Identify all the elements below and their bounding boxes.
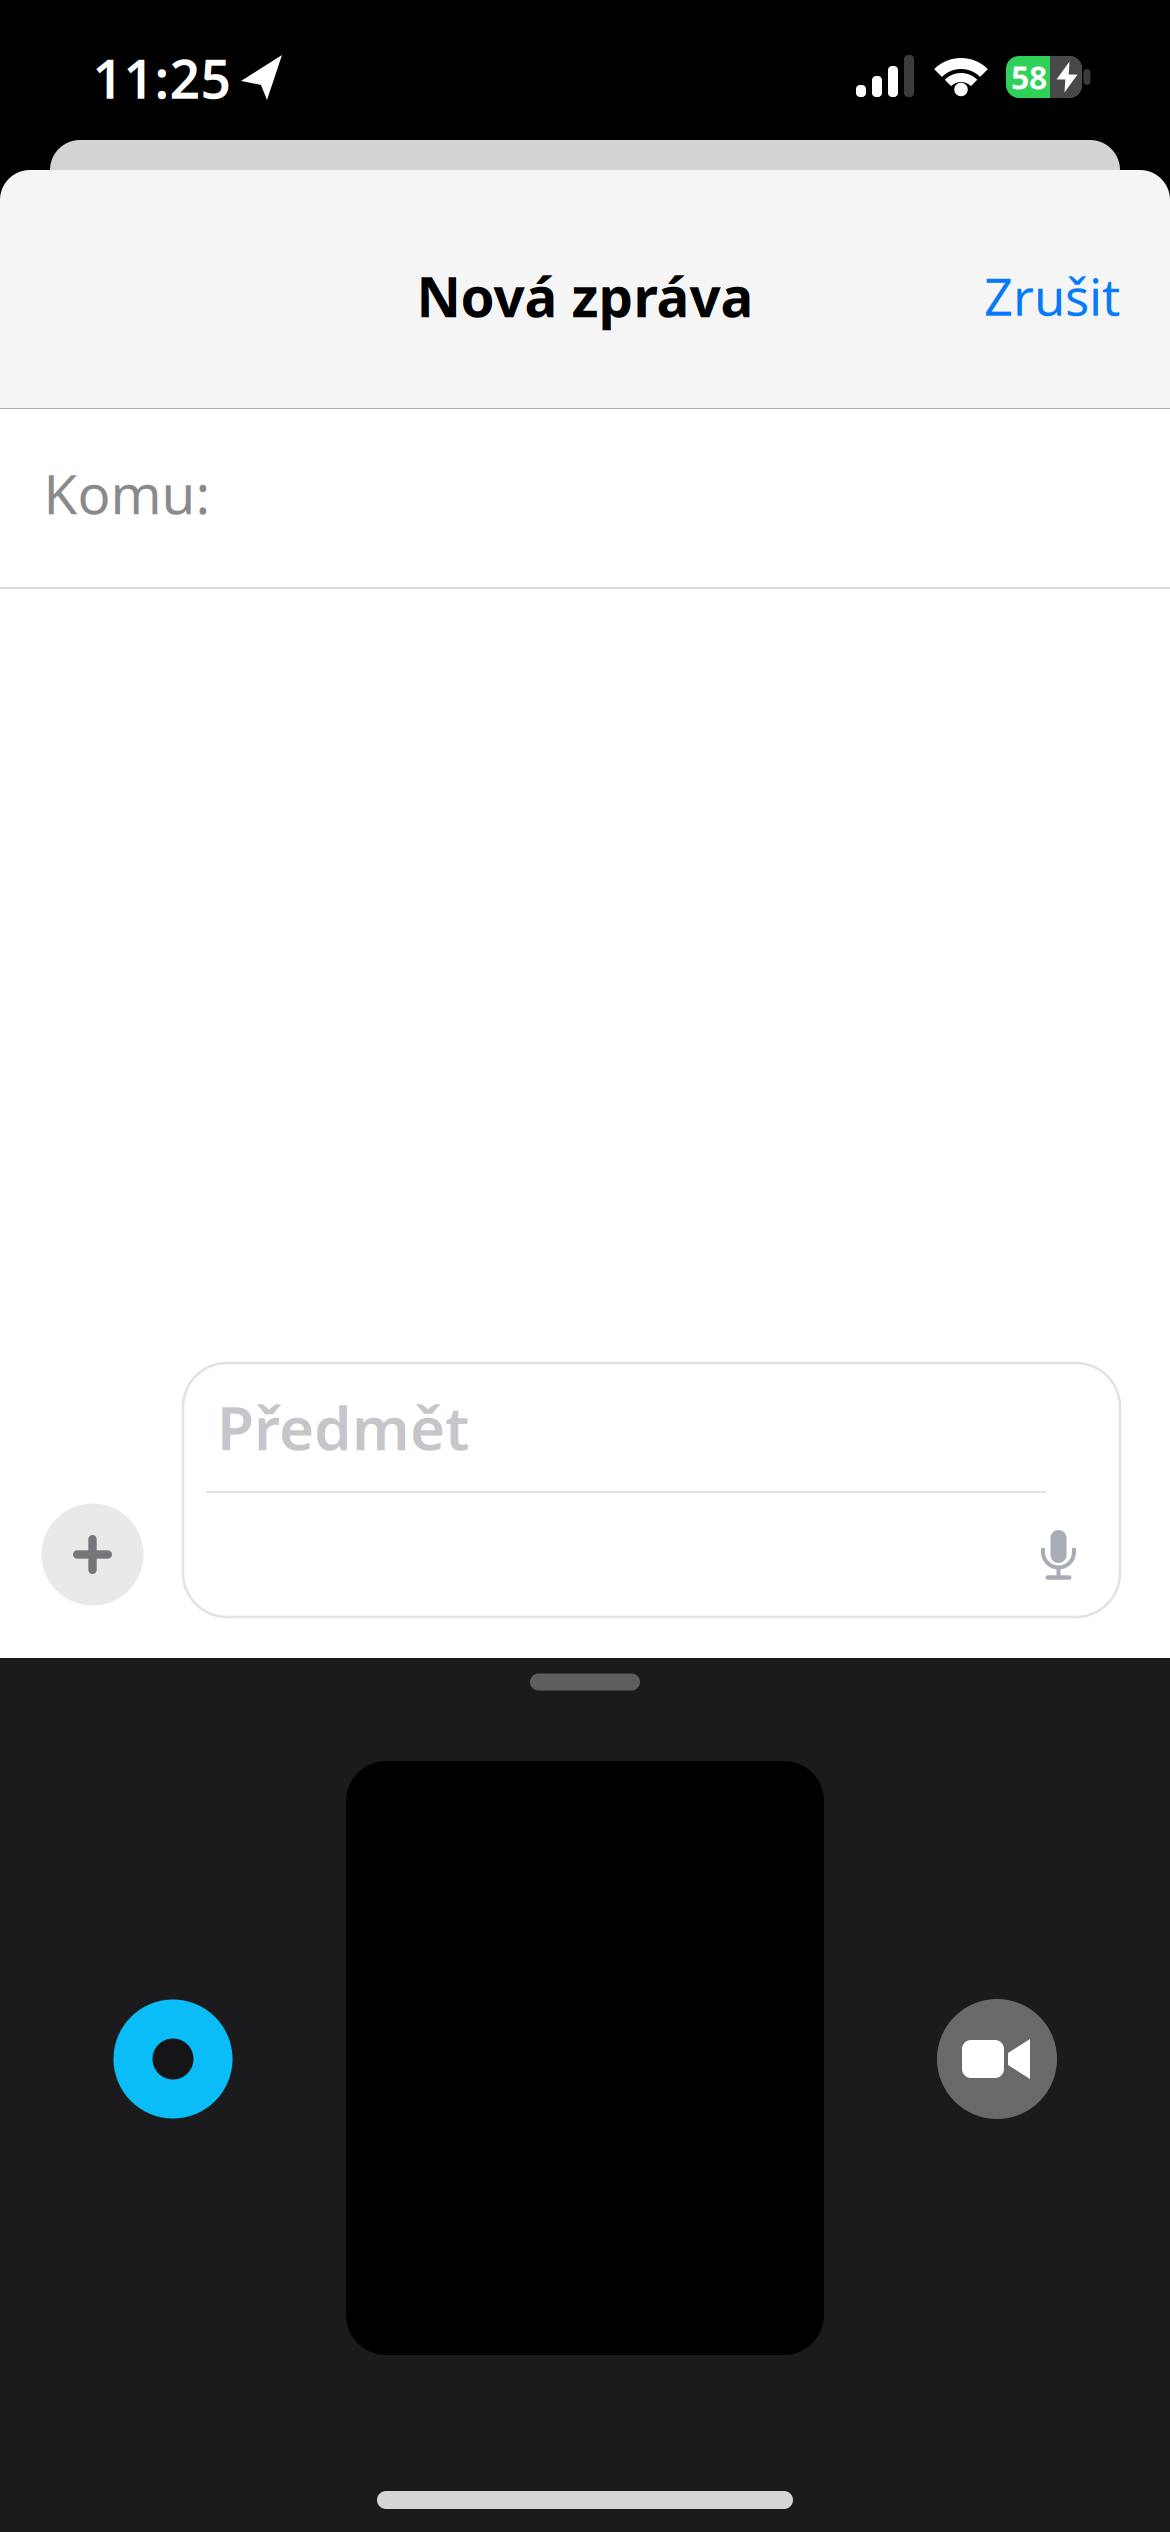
staticText: Nová zpráva	[416, 260, 753, 332]
staticText: Komu:	[43, 457, 210, 529]
button[interactable]: Pořídit fotku	[113, 1999, 232, 2118]
staticText: Zrušit	[984, 262, 1120, 330]
staticText: 11:25	[92, 43, 231, 113]
button[interactable]: Natočit video	[937, 1999, 1057, 2119]
staticText: 58	[1011, 56, 1047, 98]
button[interactable]: Předmět	[183, 1363, 1120, 1617]
button[interactable]: Zrušit	[984, 262, 1120, 330]
button[interactable]: Přidat	[41, 1503, 143, 1605]
button[interactable]: Komu:	[0, 409, 1170, 585]
staticText: Předmět	[217, 1387, 469, 1467]
